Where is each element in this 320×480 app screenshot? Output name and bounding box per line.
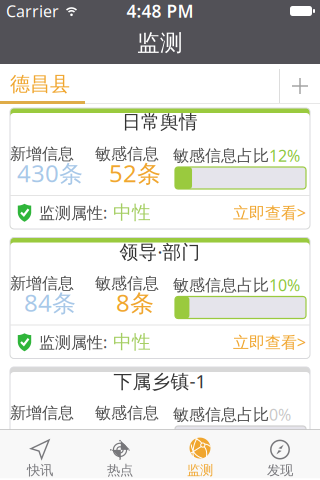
staticText: 监测属性:: [39, 202, 107, 223]
staticText: Carrier: [6, 0, 59, 22]
staticText: 中性: [113, 460, 151, 480]
staticText: 0%: [269, 404, 291, 425]
staticText: 敏感信息占比: [173, 146, 269, 165]
staticText: 84条: [24, 287, 76, 318]
button[interactable]: 监测: [160, 429, 240, 480]
staticText: 10%: [269, 274, 300, 296]
staticText: 监测: [137, 29, 183, 57]
staticText: 下属乡镇-1: [113, 369, 206, 393]
staticText: 敏感信息: [95, 144, 159, 164]
staticText: 敏感信息占比: [173, 405, 269, 424]
staticText: 监测属性:: [39, 461, 107, 480]
staticText: 快讯: [27, 462, 53, 478]
staticText: 中性: [113, 201, 151, 224]
staticText: 热点: [107, 462, 133, 478]
button[interactable]: 立即查看>: [233, 202, 306, 223]
staticText: 新增信息: [10, 403, 74, 423]
staticText: 立即查看>: [233, 331, 306, 353]
staticText: 8条: [116, 287, 154, 318]
staticText: 立即查看>: [233, 461, 306, 480]
staticText: 中性: [113, 330, 151, 353]
button[interactable]: Add: [280, 64, 320, 104]
staticText: 52条: [109, 157, 161, 189]
button[interactable]: 发现: [240, 429, 320, 480]
button[interactable]: 立即查看>: [233, 331, 306, 353]
button[interactable]: 热点: [80, 429, 160, 480]
staticText: 4:48 PM: [126, 0, 193, 22]
staticText: 监测属性:: [39, 331, 107, 353]
staticText: 立即查看>: [233, 202, 306, 223]
staticText: 敏感信息占比: [173, 275, 269, 295]
button[interactable]: 立即查看>: [233, 461, 306, 480]
staticText: 敏感信息: [95, 274, 159, 293]
staticText: 日常舆情: [122, 110, 198, 133]
staticText: 430条: [17, 157, 83, 189]
staticText: 新增信息: [10, 274, 74, 293]
staticText: 德昌县: [10, 72, 70, 96]
staticText: 领导·部门: [119, 239, 200, 264]
staticText: 监测: [187, 462, 213, 478]
staticText: 发现: [267, 462, 293, 478]
staticText: 敏感信息: [95, 403, 159, 423]
staticText: 新增信息: [10, 144, 74, 164]
staticText: 12%: [269, 145, 300, 166]
button[interactable]: 德昌县: [0, 65, 85, 102]
button[interactable]: 快讯: [0, 429, 80, 480]
